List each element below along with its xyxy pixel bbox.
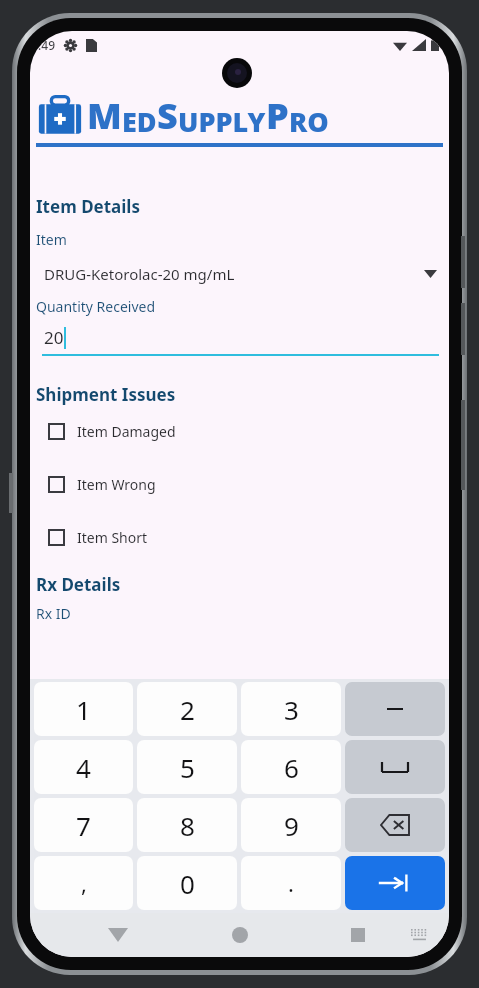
staticText: Item <box>36 230 67 249</box>
button[interactable]: . <box>241 856 341 910</box>
button[interactable]: 9 <box>241 798 341 852</box>
staticText: Item Damaged <box>77 422 176 441</box>
staticText: DRUG-Ketorolac-20 mg/mL <box>44 264 235 284</box>
button[interactable]: Back <box>108 928 128 942</box>
staticText: ED <box>122 103 157 140</box>
button[interactable]: , <box>34 856 133 910</box>
button[interactable]: 0 <box>137 856 237 910</box>
staticText: 6 <box>284 750 299 785</box>
staticText: RO <box>289 103 329 140</box>
staticText: UPPLY <box>178 103 266 140</box>
staticText: 7 <box>76 808 91 843</box>
button[interactable]: 4 <box>34 740 133 794</box>
staticText: P <box>266 91 289 140</box>
button[interactable]: Backspace <box>345 798 445 852</box>
button[interactable]: Item Damaged <box>36 420 443 443</box>
staticText: Rx ID <box>36 604 71 623</box>
staticText: 2 <box>180 692 195 727</box>
staticText: Quantity Received <box>36 297 156 316</box>
staticText: M <box>87 91 122 140</box>
staticText: S <box>157 91 178 140</box>
button[interactable]: 5 <box>137 740 237 794</box>
other: Open item dropdown <box>424 270 437 278</box>
staticText: :49 <box>38 37 55 53</box>
button[interactable]: 7 <box>34 798 133 852</box>
button[interactable]: 20 <box>36 326 443 356</box>
button[interactable]: DRUG-Ketorolac-20 mg/mL <box>36 257 443 291</box>
button[interactable]: Next <box>345 856 445 910</box>
staticText: Shipment Issues <box>36 383 176 406</box>
staticText: 5 <box>180 750 195 785</box>
button[interactable]: 1 <box>34 682 133 736</box>
staticText: Item Short <box>77 528 148 547</box>
staticText: Item Wrong <box>77 475 156 494</box>
staticText: 20 <box>44 326 64 349</box>
button[interactable]: Switch keyboard <box>411 929 428 941</box>
staticText: 0 <box>180 866 195 901</box>
staticText: 1 <box>76 692 91 727</box>
staticText: 8 <box>180 808 195 843</box>
button[interactable]: Item Short <box>36 526 443 549</box>
staticText: 9 <box>284 808 299 843</box>
button[interactable]: Space <box>345 740 445 794</box>
button[interactable]: 2 <box>137 682 237 736</box>
staticText: 3 <box>284 692 299 727</box>
button[interactable]: Minus <box>345 682 445 736</box>
button[interactable]: 3 <box>241 682 341 736</box>
staticText: 4 <box>76 750 91 785</box>
staticText: Rx Details <box>36 573 121 596</box>
button[interactable]: 6 <box>241 740 341 794</box>
button[interactable]: Item Wrong <box>36 473 443 496</box>
button[interactable]: 8 <box>137 798 237 852</box>
staticText: . <box>288 868 294 898</box>
staticText: , <box>81 868 87 898</box>
button[interactable]: Home <box>232 927 248 943</box>
staticText: Item Details <box>36 195 140 218</box>
